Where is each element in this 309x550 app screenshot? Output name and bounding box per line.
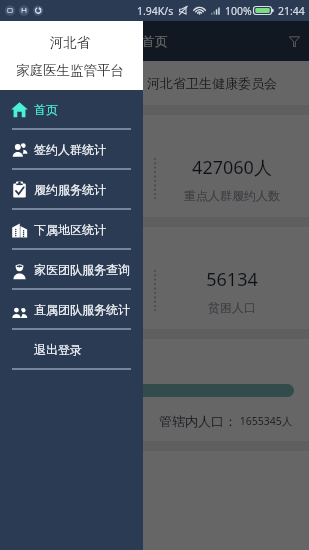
staticText: 首页 <box>34 102 58 117</box>
staticText: 家医团队服务查询 <box>34 262 130 277</box>
staticText: 重点人群履约人数 <box>184 188 280 203</box>
button[interactable]: 家医团队服务查询 <box>0 250 143 290</box>
staticText: 家庭医生监管平台 <box>16 62 124 79</box>
button[interactable]: 下属地区统计 <box>0 210 143 250</box>
button[interactable]: 直属团队服务统计 <box>0 290 143 330</box>
staticText: 下属地区统计 <box>34 222 106 237</box>
staticText: 327060 <box>46 267 108 292</box>
button[interactable]: Filter <box>280 27 308 55</box>
staticText: 427060人 <box>37 155 117 180</box>
staticText: 直属团队服务统计 <box>34 302 130 317</box>
button[interactable]: 履约服务统计 <box>0 170 143 210</box>
staticText: 1655345人 <box>237 414 293 428</box>
staticText: 首页 <box>142 33 168 49</box>
staticText: 签约人群统计 <box>34 142 106 157</box>
staticText: 重点人群 <box>53 300 101 315</box>
staticText: 管辖内人口： <box>159 413 237 429</box>
staticText: 56134 <box>206 267 258 292</box>
staticText: 427060人 <box>192 155 272 180</box>
staticText: 履约服务统计 <box>34 182 106 197</box>
staticText: 退出登录 <box>34 342 82 357</box>
button[interactable]: 首页 <box>0 90 143 130</box>
staticText: 河北省卫生健康委员会 <box>147 75 277 91</box>
staticText: 100% <box>225 4 252 18</box>
staticText: 21:44 <box>278 4 305 18</box>
staticText: 贫困人口 <box>208 300 256 315</box>
button[interactable]: 退出登录 <box>0 330 143 370</box>
button[interactable]: 签约人群统计 <box>0 130 143 170</box>
staticText: 河北省 <box>50 34 91 51</box>
staticText: 1.94K/s <box>137 4 174 18</box>
staticText: 重点人群履约人数 <box>29 188 125 203</box>
